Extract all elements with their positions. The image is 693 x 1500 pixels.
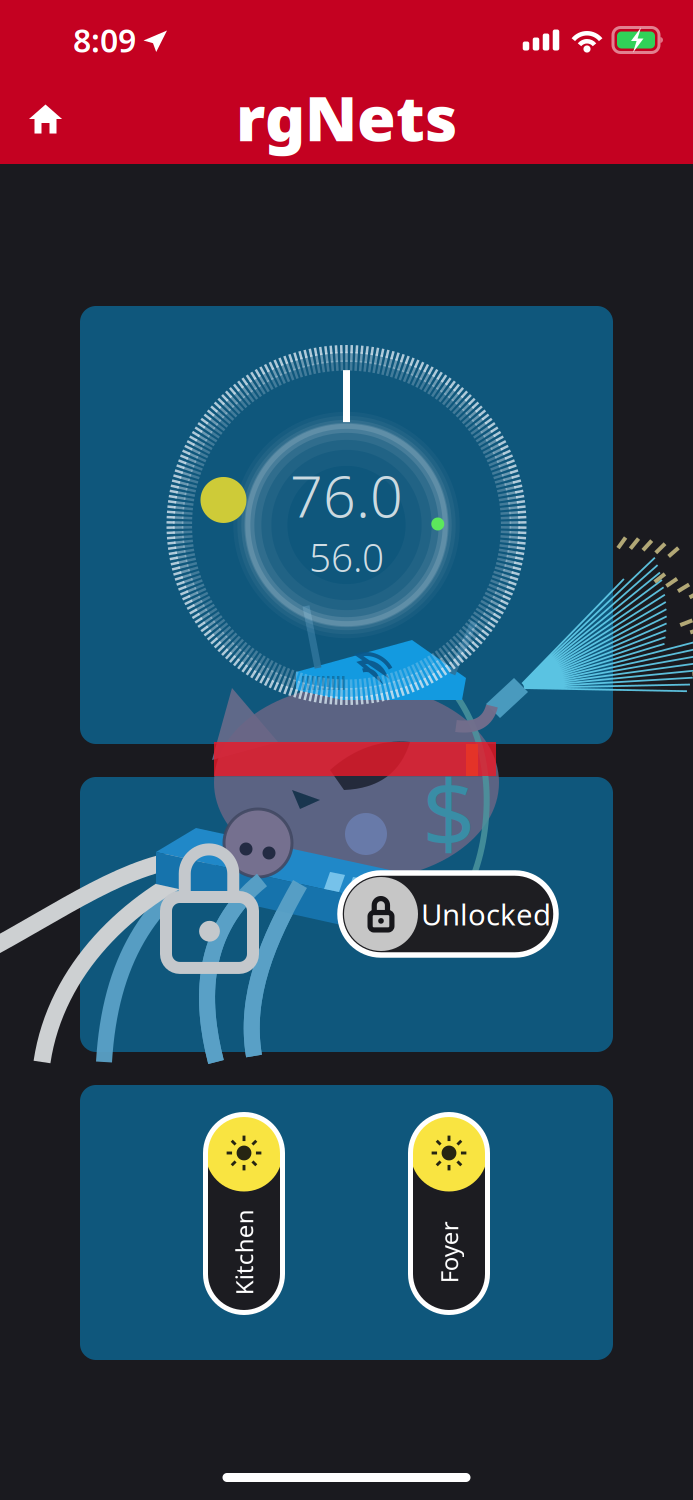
button[interactable]: Kitchen <box>205 1114 282 1312</box>
button[interactable]: Unlocked <box>80 777 613 1052</box>
button[interactable]: 76.0 <box>80 306 613 744</box>
staticText: Foyer <box>418 1236 480 1268</box>
button[interactable]: Foyer <box>410 1114 487 1312</box>
staticText: 8:09 <box>73 19 136 61</box>
button[interactable]: Home <box>15 92 76 145</box>
staticText: 76.0 <box>290 457 403 533</box>
staticText: 56.0 <box>309 531 384 583</box>
staticText: rgNets <box>236 75 457 159</box>
staticText: Kitchen <box>201 1236 287 1268</box>
staticText: $ <box>422 750 475 874</box>
staticText: Unlocked <box>421 894 551 933</box>
